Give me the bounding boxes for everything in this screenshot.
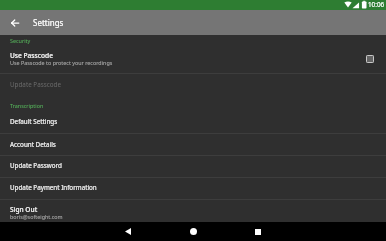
button[interactable]: Default Settings — [0, 112, 386, 133]
button[interactable]: Account Details — [0, 134, 386, 155]
button[interactable]: Use Passcode checkbox — [360, 49, 379, 69]
staticText: Use Passcode — [10, 51, 53, 60]
button[interactable]: Navigate up — [3, 10, 26, 35]
staticText: Security — [10, 37, 31, 44]
staticText: 10:06 — [368, 0, 385, 9]
staticText: Use Passcode to protect your recordings — [10, 59, 113, 66]
staticText: boris@softeight.com — [10, 213, 63, 220]
button[interactable]: Update Password — [0, 156, 386, 177]
button[interactable]: Back — [113, 222, 143, 241]
staticText: Default Settings — [10, 117, 58, 126]
staticText: Account Details — [10, 140, 56, 149]
staticText: Sign Out — [10, 205, 38, 214]
staticText: Update Password — [10, 161, 62, 170]
button[interactable]: Update Passcode — [0, 74, 386, 97]
button[interactable]: Recent apps — [243, 222, 273, 241]
staticText: Settings — [33, 17, 64, 28]
staticText: Update Payment Information — [10, 183, 97, 192]
button[interactable]: Use Passcode — [0, 45, 386, 73]
button[interactable]: Sign Out — [0, 200, 386, 222]
button[interactable]: Home — [178, 222, 208, 241]
button[interactable]: Update Payment Information — [0, 178, 386, 199]
staticText: Transcription — [10, 102, 44, 109]
staticText: Update Passcode — [10, 80, 61, 89]
